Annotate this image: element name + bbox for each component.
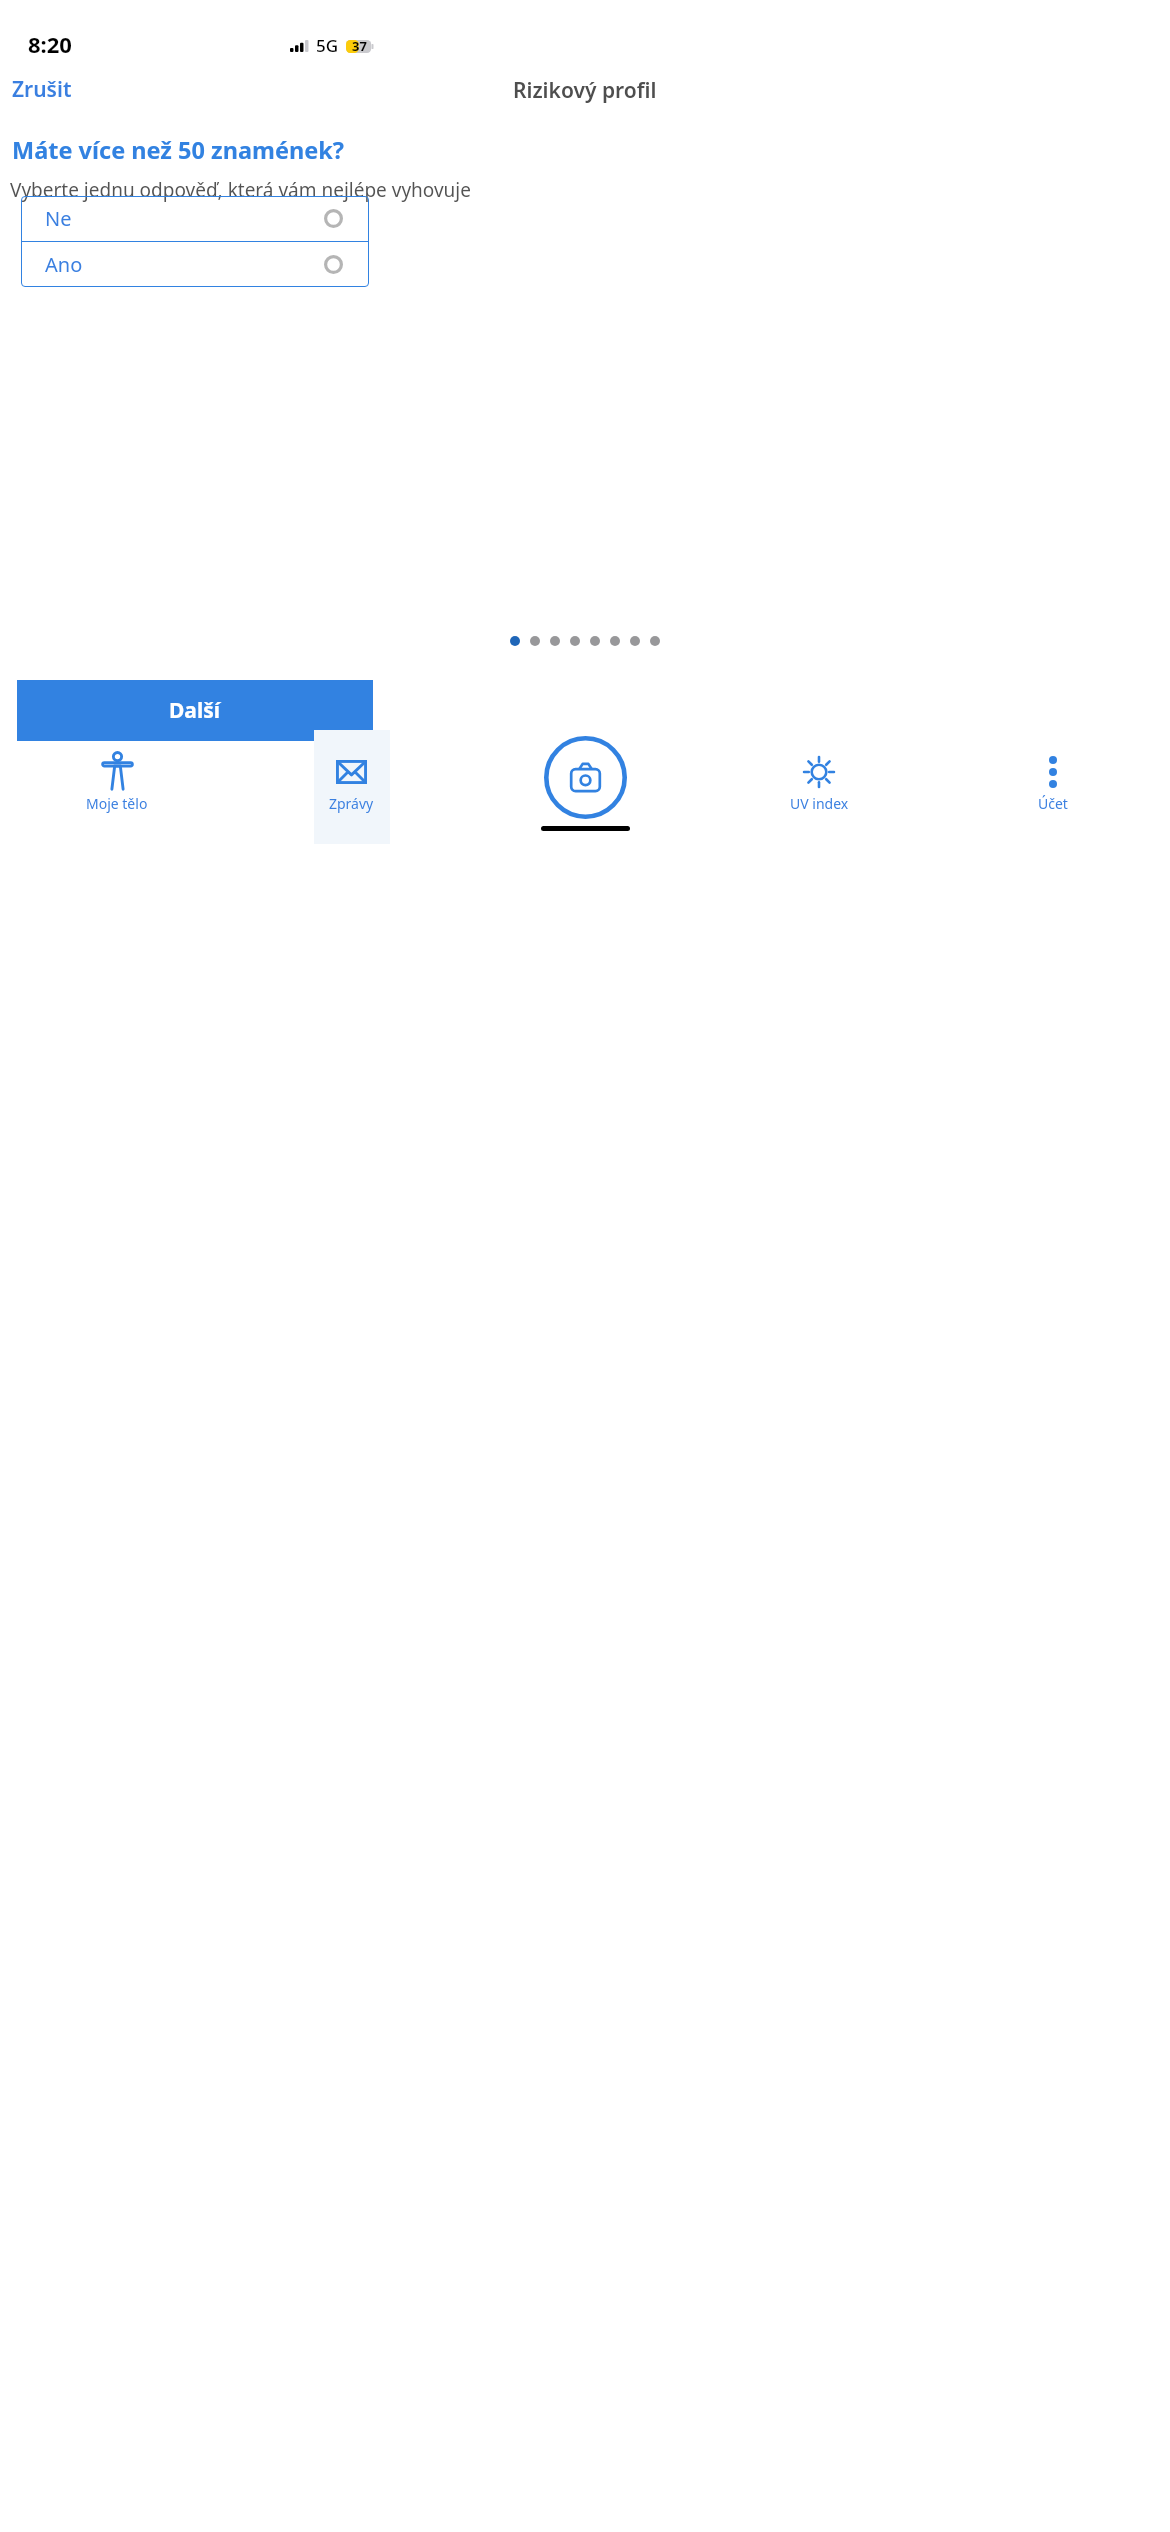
button[interactable]: Účet bbox=[936, 750, 1170, 813]
staticText: Ano bbox=[45, 251, 83, 278]
staticText: Další bbox=[169, 696, 221, 725]
staticText: Vyberte jednu odpověď, která vám nejlépe… bbox=[10, 177, 471, 203]
staticText: 37 bbox=[352, 37, 367, 55]
staticText: Ne bbox=[45, 205, 72, 232]
button[interactable]: Ne bbox=[21, 196, 369, 241]
button[interactable]: Další bbox=[17, 680, 373, 741]
staticText: 8:20 bbox=[28, 29, 72, 59]
staticText: Moje tělo bbox=[86, 794, 148, 813]
staticText: Zrušit bbox=[12, 75, 72, 104]
button[interactable]: Moje tělo bbox=[0, 750, 234, 813]
button[interactable]: Zprávy bbox=[234, 750, 468, 813]
staticText: 5G bbox=[316, 34, 339, 57]
button[interactable]: Ano bbox=[21, 242, 369, 287]
staticText: Rizikový profil bbox=[513, 76, 657, 105]
button[interactable]: UV index bbox=[702, 750, 936, 813]
staticText: Máte více než 50 znamének? bbox=[12, 134, 345, 166]
staticText: UV index bbox=[790, 794, 849, 813]
staticText: Zprávy bbox=[329, 794, 374, 813]
button[interactable]: Camera bbox=[544, 736, 627, 819]
staticText: Účet bbox=[1038, 794, 1068, 813]
button[interactable]: Zrušit bbox=[8, 68, 76, 111]
